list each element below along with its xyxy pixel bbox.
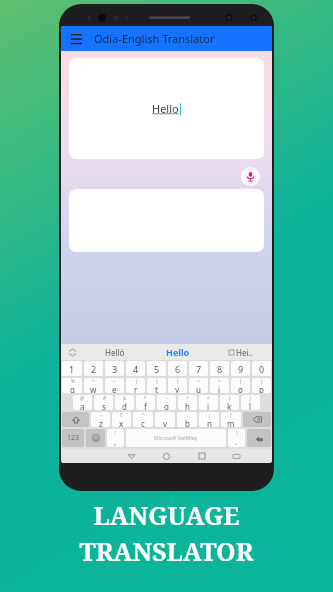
button[interactable]: * — [136, 395, 155, 410]
button[interactable]: Enter — [247, 429, 271, 447]
button[interactable]: Voice input — [241, 167, 260, 186]
staticText: l — [249, 401, 252, 410]
button[interactable]: Helló — [83, 344, 146, 360]
staticText: { — [156, 378, 158, 384]
button[interactable]: : — [177, 412, 197, 427]
staticText: p — [259, 384, 264, 393]
button[interactable]: 8 — [210, 361, 229, 376]
staticText: ( — [240, 378, 242, 384]
staticText: / — [230, 412, 232, 418]
button[interactable]: ? — [228, 429, 245, 447]
button[interactable]: 7 — [189, 361, 208, 376]
staticText: s — [102, 401, 106, 410]
button[interactable]: ! — [107, 429, 124, 447]
button[interactable]: 5 — [147, 361, 166, 376]
staticText: q — [70, 384, 75, 393]
button[interactable]: ( — [231, 378, 250, 393]
button[interactable]: ) — [241, 395, 260, 410]
staticText: ₹ — [120, 412, 123, 418]
staticText: x — [119, 418, 124, 427]
staticText: ( — [229, 395, 231, 401]
staticText: u — [196, 384, 201, 393]
button[interactable]: + — [178, 395, 197, 410]
staticText: # — [103, 395, 106, 401]
button[interactable]: Back — [114, 449, 149, 463]
button[interactable]: % — [62, 378, 82, 393]
button[interactable]: Menu — [61, 26, 272, 51]
button[interactable]: Hello — [69, 58, 264, 159]
button[interactable]: ; — [199, 412, 219, 427]
staticText: . — [235, 436, 238, 447]
button[interactable]: 0 — [252, 361, 271, 376]
staticText: | — [135, 378, 138, 384]
staticText: 5 — [154, 363, 160, 375]
staticText: Odia-English Translator — [94, 31, 215, 46]
button[interactable]: Shift — [62, 412, 89, 427]
button[interactable]: Home — [149, 449, 184, 463]
staticText: j — [207, 401, 210, 410]
button[interactable]: 9 — [231, 361, 250, 376]
staticText: & — [123, 395, 127, 401]
staticText: e — [112, 384, 117, 393]
staticText: ^ — [92, 378, 95, 384]
button[interactable]: > — [210, 378, 229, 393]
staticText: Hello — [152, 101, 179, 116]
staticText: Hei.. — [236, 347, 253, 358]
button[interactable]: ~ — [91, 412, 110, 427]
button[interactable]: 6 — [168, 361, 187, 376]
staticText: ' — [165, 412, 167, 418]
button[interactable]: { — [147, 378, 166, 393]
staticText: + — [186, 395, 189, 401]
staticText: k — [227, 401, 232, 410]
button[interactable]: Expand suggestions — [61, 344, 83, 360]
staticText: z — [99, 418, 103, 427]
button[interactable]: = — [199, 395, 218, 410]
button[interactable]: Hide keyboard — [219, 449, 254, 463]
staticText: w — [90, 384, 97, 393]
button[interactable]: } — [168, 378, 187, 393]
button[interactable]: ~ — [105, 378, 124, 393]
button[interactable]: " — [133, 412, 153, 427]
button[interactable]: 3 — [105, 361, 124, 376]
button[interactable]: Emoji — [86, 429, 105, 447]
button[interactable]: & — [115, 395, 134, 410]
button[interactable]: Hello — [146, 344, 209, 360]
staticText: g — [164, 401, 169, 410]
staticText: a — [80, 401, 85, 410]
staticText: - — [166, 395, 168, 401]
button[interactable]: 2 — [84, 361, 103, 376]
staticText: r — [134, 384, 138, 393]
button[interactable]: 4 — [126, 361, 145, 376]
button[interactable]: @ — [73, 395, 92, 410]
button[interactable]: ^ — [84, 378, 103, 393]
button[interactable]: # — [94, 395, 113, 410]
button[interactable]: < — [189, 378, 208, 393]
staticText: ; — [209, 412, 211, 418]
staticText: i — [218, 384, 221, 393]
button[interactable]: Backspace — [243, 412, 271, 427]
button[interactable]: Recent apps — [184, 449, 219, 463]
button[interactable]: Hei.. — [209, 344, 272, 360]
button[interactable]: / — [221, 412, 241, 427]
button[interactable]: - — [157, 395, 176, 410]
staticText: v — [163, 418, 168, 427]
button[interactable]: 123 — [62, 429, 84, 447]
button[interactable]: ₹ — [112, 412, 131, 427]
staticText: > — [218, 378, 221, 384]
staticText: " — [142, 412, 144, 418]
button[interactable]: Menu — [68, 31, 84, 47]
staticText: < — [197, 378, 200, 384]
button[interactable]: 1 — [62, 361, 82, 376]
staticText: 2 — [91, 363, 97, 375]
button[interactable]: ' — [155, 412, 175, 427]
staticText: : — [187, 412, 189, 418]
button[interactable]: ( — [220, 395, 239, 410]
staticText: * — [144, 395, 147, 401]
button[interactable]: ) — [252, 378, 271, 393]
staticText: y — [175, 384, 180, 393]
staticText: 3 — [112, 363, 118, 375]
button[interactable]: | — [126, 378, 145, 393]
staticText: } — [177, 378, 179, 384]
button[interactable]: Microsoft SwiftKey — [126, 429, 226, 447]
